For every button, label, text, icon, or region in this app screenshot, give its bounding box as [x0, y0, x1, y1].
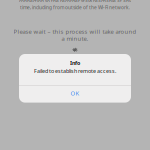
staticText: time, including from outside of the Wi-F…	[20, 4, 130, 11]
staticText: Info	[70, 59, 80, 67]
staticText: connection so the recorder stays reachab…	[19, 0, 131, 4]
button[interactable]: OK	[19, 86, 131, 103]
staticText: a minute.	[61, 34, 88, 42]
staticText: Please wait – this process will take aro…	[13, 27, 136, 35]
staticText: OK	[70, 89, 79, 97]
staticText: Failed to establish remote access.	[34, 67, 116, 75]
